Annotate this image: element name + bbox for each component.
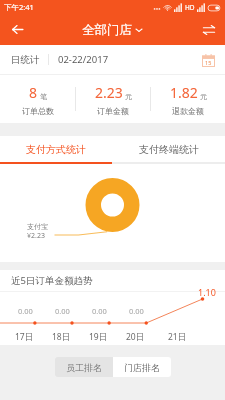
staticText: 支付宝 [27, 222, 48, 231]
staticText: 0.00 [92, 306, 107, 316]
staticText: 下午2:41 [4, 2, 34, 12]
staticText: ¥2.23 [27, 231, 45, 241]
button[interactable]: Switch [193, 14, 225, 45]
button[interactable]: 2.23 [76, 83, 150, 116]
staticText: 支付终端统计 [139, 143, 199, 156]
staticText: 0.00 [18, 306, 33, 316]
staticText: 17日 [15, 331, 34, 343]
staticText: 门店排名 [124, 362, 160, 373]
staticText: 1.10 [198, 286, 216, 298]
staticText: 0.00 [55, 306, 70, 316]
staticText: 19日 [89, 331, 108, 343]
staticText: 元 [200, 92, 207, 101]
button[interactable]: 门店排名 [113, 357, 171, 377]
staticText: 0.00 [129, 306, 144, 316]
staticText: 2.23 [95, 83, 123, 102]
button[interactable]: Back [0, 14, 34, 45]
button[interactable]: 全部门店 [82, 22, 143, 38]
staticText: 1.82 [170, 83, 198, 102]
staticText: 退款金额 [172, 106, 204, 116]
staticText: 订单金额 [97, 106, 129, 116]
staticText: 员工排名 [66, 362, 102, 373]
staticText: 18日 [52, 331, 71, 343]
button[interactable]: Pick date [199, 51, 217, 69]
staticText: 订单总数 [22, 106, 54, 116]
staticText: 02-22/2017 [58, 53, 109, 66]
staticText: 日统计 [11, 54, 40, 66]
button[interactable]: 员工排名 [55, 357, 113, 377]
staticText: 15 [205, 59, 212, 66]
button[interactable]: 8 [0, 83, 75, 116]
staticText: 近5日订单金额趋势 [11, 274, 93, 287]
staticText: HD [185, 3, 195, 12]
staticText: 8 [29, 83, 38, 102]
button[interactable]: 支付终端统计 [112, 136, 225, 162]
staticText: 20日 [126, 331, 145, 343]
staticText: 21日 [168, 331, 187, 343]
staticText: 全部门店 [82, 22, 132, 38]
button[interactable]: 1.82 [151, 83, 225, 116]
button[interactable]: 支付方式统计 [0, 136, 112, 162]
staticText: 元 [125, 92, 132, 101]
staticText: 支付方式统计 [26, 143, 86, 156]
staticText: 笔 [40, 92, 47, 101]
